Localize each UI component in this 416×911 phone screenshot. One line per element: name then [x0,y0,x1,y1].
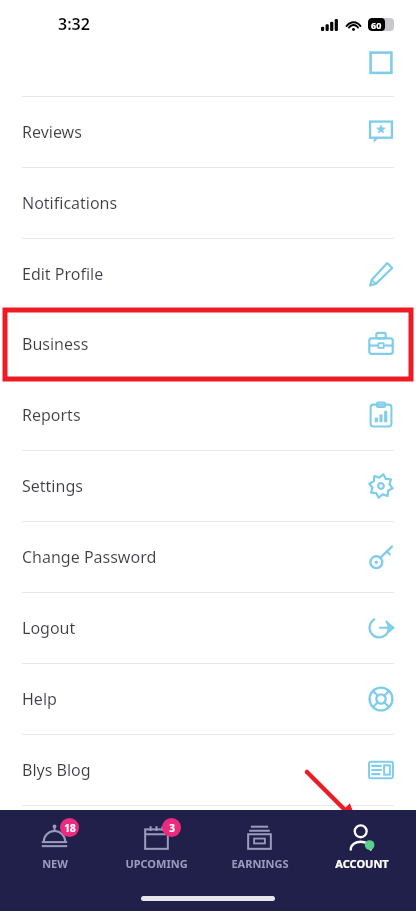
staticText: NEW [42,856,68,871]
staticText: Help [22,688,368,710]
button[interactable]: Reports [0,380,416,450]
button[interactable]: Blys Blog [0,735,416,805]
staticText: Reviews [22,121,368,143]
staticText: 60 [371,19,382,31]
staticText: ACCOUNT [335,856,389,871]
staticText: Reports [22,404,368,426]
button[interactable]: Logout [0,593,416,663]
button[interactable]: Settings [0,451,416,521]
button[interactable]: Reviews [0,97,416,167]
staticText: Notifications [22,192,394,214]
staticText: Edit Profile [22,263,368,285]
button[interactable]: ACCOUNT [314,822,409,873]
button[interactable]: Help [0,664,416,734]
button[interactable]: Business [0,309,416,379]
staticText: Business [22,333,368,355]
button[interactable]: EARNINGS [212,822,307,873]
staticText: 3 [169,821,175,835]
staticText: Blys Blog [22,759,368,781]
button[interactable]: Notifications [0,168,416,238]
button[interactable] [0,48,416,96]
staticText: UPCOMING [125,856,188,871]
staticText: Logout [22,617,368,639]
button[interactable]: Change Password [0,522,416,592]
staticText: Settings [22,475,368,497]
staticText: EARNINGS [231,856,289,871]
staticText: Change Password [22,546,368,568]
button[interactable]: Edit Profile [0,239,416,309]
button[interactable]: 3 [109,822,204,873]
staticText: 3:32 [58,13,90,35]
button[interactable]: 18 [7,822,102,873]
staticText: 18 [64,821,76,835]
